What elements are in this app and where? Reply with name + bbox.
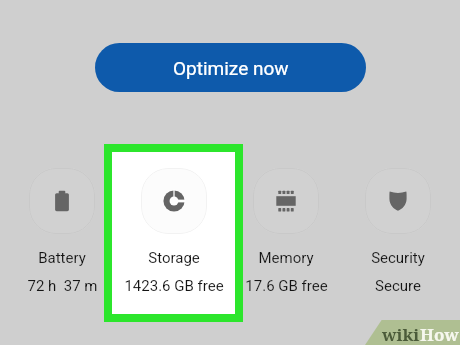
- other: Storage: [162, 189, 186, 213]
- staticText: Storage: [148, 249, 200, 267]
- button[interactable]: Battery: [6, 168, 118, 295]
- button[interactable]: Optimize now: [95, 43, 366, 92]
- staticText: 1423.6 GB free: [124, 277, 224, 295]
- staticText: 17.6 GB free: [245, 277, 328, 295]
- staticText: 72 h 37 m: [27, 277, 98, 295]
- staticText: How: [420, 323, 459, 345]
- other: Memory: [274, 189, 298, 213]
- other: Security: [386, 189, 410, 213]
- staticText: Memory: [258, 249, 314, 267]
- staticText: Battery: [38, 249, 86, 267]
- button[interactable]: Security: [342, 168, 454, 295]
- other: Battery: [50, 189, 74, 213]
- button[interactable]: Storage: [118, 168, 230, 295]
- button[interactable]: Memory: [230, 168, 342, 295]
- staticText: Secure: [375, 277, 421, 295]
- staticText: Security: [371, 249, 425, 267]
- staticText: Optimize now: [173, 57, 289, 79]
- staticText: wiki: [382, 323, 420, 345]
